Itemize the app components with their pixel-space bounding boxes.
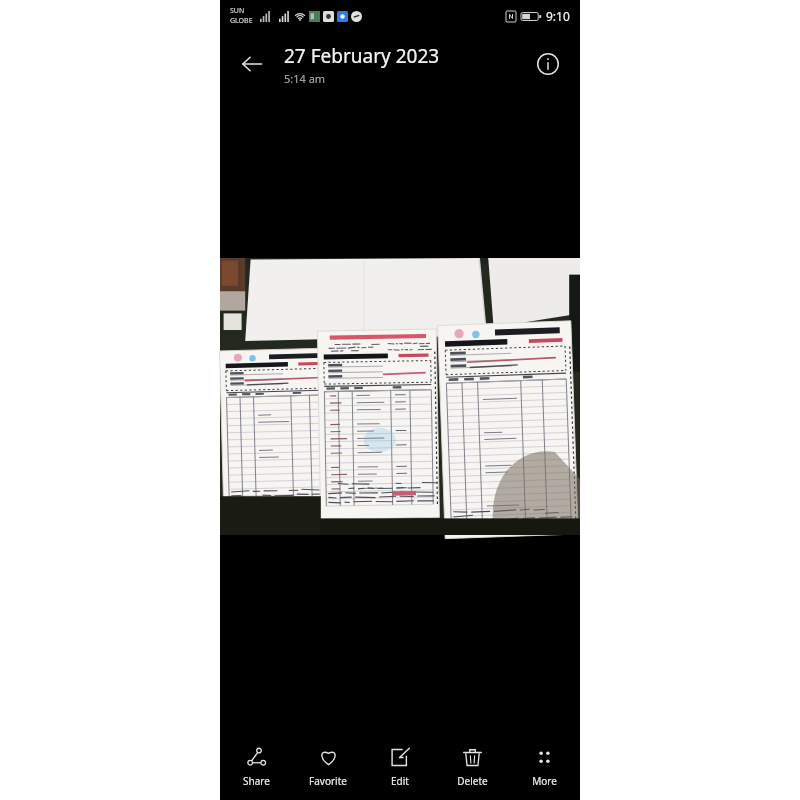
button[interactable]: Details (524, 40, 572, 88)
staticText: Share (243, 774, 270, 788)
staticText: 5:14 am (284, 71, 326, 86)
staticText: More (532, 774, 557, 788)
button[interactable]: More (508, 734, 580, 800)
button[interactable]: Edit (364, 734, 436, 800)
staticText: Favorite (309, 774, 347, 788)
staticText: GLOBE (230, 16, 253, 26)
staticText: 27 February 2023 (284, 43, 440, 69)
button[interactable]: Photo (220, 258, 580, 535)
button[interactable]: Share (220, 734, 292, 800)
staticText: SUN (230, 6, 245, 16)
button[interactable]: Delete (436, 734, 508, 800)
button[interactable]: Favorite (292, 734, 364, 800)
staticText: 9:10 (546, 8, 570, 24)
button[interactable]: Back (228, 40, 276, 88)
staticText: Edit (391, 774, 409, 788)
staticText: Delete (457, 774, 488, 788)
